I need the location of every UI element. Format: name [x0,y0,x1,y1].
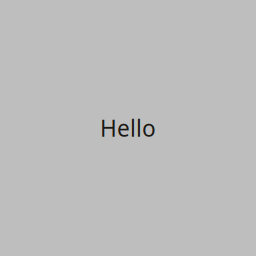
staticText: Hello [100,113,156,143]
